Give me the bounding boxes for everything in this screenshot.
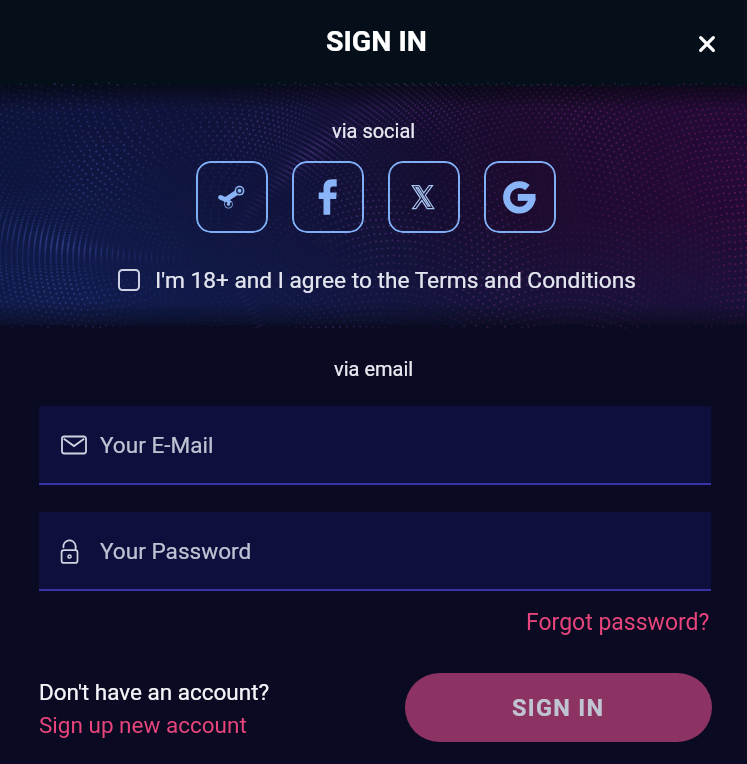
button[interactable]: Forgot password? [526,609,710,636]
button[interactable]: Sign in with Steam [196,161,268,233]
staticText: Sign up new account [39,712,247,738]
staticText: via social [332,119,416,142]
staticText: Your E-Mail [100,432,214,458]
button[interactable]: Sign up new account [39,712,247,738]
button[interactable]: Sign in with Google [484,161,556,233]
staticText: via email [334,357,414,380]
staticText: Don't have an account? [39,679,270,705]
staticText: Your Password [100,538,252,564]
button[interactable]: I'm 18+ and I agree to the Terms and Con… [118,262,638,298]
button[interactable]: E-Mail address [39,406,711,483]
staticText: SIGN IN [512,694,605,722]
button[interactable]: Sign in with Facebook [292,161,364,233]
staticText: Forgot password? [526,609,710,636]
button[interactable]: Close [684,21,730,67]
button[interactable]: Sign in with X [388,161,460,233]
staticText: SIGN IN [326,25,427,58]
staticText: I'm 18+ and I agree to the Terms and Con… [155,267,637,294]
button[interactable]: SIGN IN [405,673,712,742]
button[interactable]: Password [39,512,711,589]
